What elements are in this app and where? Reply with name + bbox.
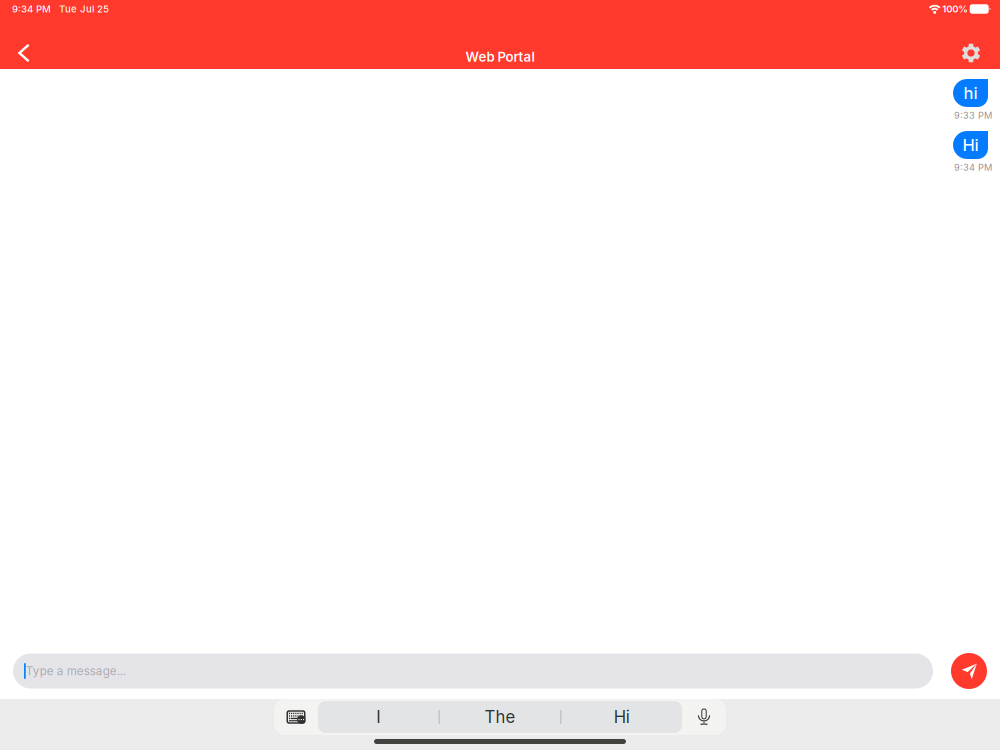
staticText: 9:34 PM [12,3,51,15]
button[interactable]: I [318,701,439,733]
button[interactable]: Send [951,653,987,689]
staticText: The [484,707,515,727]
button[interactable]: Hi [561,701,682,733]
staticText: I [376,707,380,727]
staticText: Tue Jul 25 [59,3,109,15]
staticText: 9:34 PM [954,162,992,173]
staticText: 9:33 PM [954,110,992,121]
button[interactable]: Keyboard options [274,699,318,735]
staticText: Type a message... [26,664,126,678]
button[interactable]: Dictate [682,699,726,735]
button[interactable]: Settings [951,36,991,70]
staticText: Web Portal [465,49,534,65]
staticText: Hi [962,135,978,155]
staticText: Hi [614,707,630,727]
button[interactable]: Type a message... [13,653,933,688]
button[interactable]: The [440,701,560,733]
button[interactable]: Back [4,36,44,70]
staticText: hi [963,83,977,103]
staticText: 100% [942,3,968,15]
